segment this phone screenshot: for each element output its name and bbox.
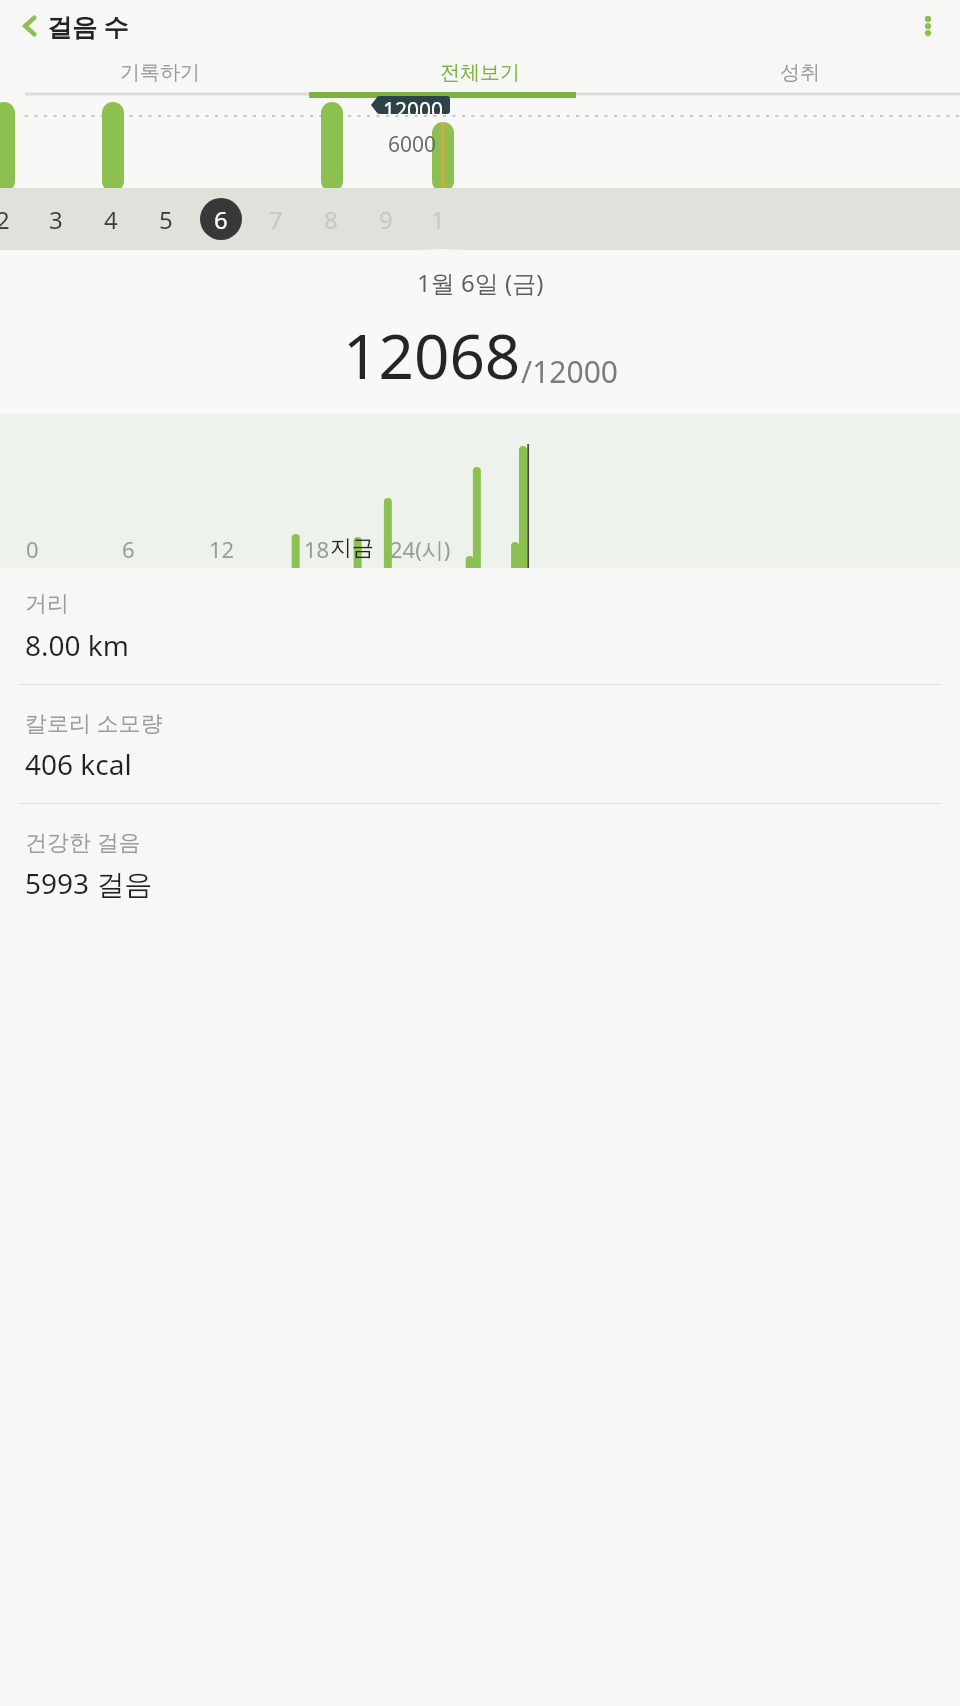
staticText: 0 xyxy=(26,534,39,564)
button[interactable]: Back xyxy=(6,2,54,50)
staticText: 6 xyxy=(214,203,228,236)
staticText: 12 xyxy=(209,534,235,564)
staticText: 기록하기 xyxy=(120,60,200,85)
staticText: 5 xyxy=(159,203,173,236)
staticText: 1월 6일 (금) xyxy=(417,266,544,299)
button[interactable]: 9 xyxy=(365,198,407,240)
staticText: 12000 xyxy=(383,96,444,114)
staticText: 7 xyxy=(269,203,283,236)
staticText: 거리 xyxy=(25,590,69,618)
button[interactable]: 6 xyxy=(200,198,242,240)
button[interactable]: 4 xyxy=(90,198,132,240)
staticText: 24(시) xyxy=(390,534,451,564)
button[interactable]: 1 xyxy=(417,198,459,240)
staticText: 9 xyxy=(379,203,393,236)
button[interactable]: 8 xyxy=(310,198,352,240)
button[interactable]: 기록하기 xyxy=(0,52,320,92)
staticText: /12000 xyxy=(521,351,618,392)
staticText: 406 kcal xyxy=(25,745,132,783)
button[interactable]: 전체보기 xyxy=(320,52,640,92)
staticText: 걸음 수 xyxy=(47,9,129,43)
staticText: 전체보기 xyxy=(440,60,520,85)
staticText: 지금 xyxy=(330,534,374,562)
staticText: 5993 걸음 xyxy=(25,864,153,902)
staticText: 칼로리 소모량 xyxy=(25,707,163,737)
button[interactable]: 5 xyxy=(145,198,187,240)
button[interactable]: 거리 xyxy=(0,568,960,685)
button[interactable]: 7 xyxy=(255,198,297,240)
staticText: 4 xyxy=(104,203,118,236)
staticText: 6000 xyxy=(388,130,437,159)
button[interactable]: 칼로리 소모량 xyxy=(0,685,960,804)
staticText: 건강한 걸음 xyxy=(25,826,141,856)
staticText: 2 xyxy=(0,203,10,236)
staticText: 6 xyxy=(122,534,135,564)
staticText: 성취 xyxy=(780,60,820,85)
button[interactable]: More options xyxy=(904,2,952,50)
button[interactable]: 2 xyxy=(0,198,24,240)
staticText: 8 xyxy=(324,203,338,236)
button[interactable]: 3 xyxy=(35,198,77,240)
staticText: 12068 xyxy=(343,313,521,397)
staticText: 1 xyxy=(431,203,445,236)
staticText: 18 xyxy=(304,534,330,564)
staticText: 8.00 km xyxy=(25,626,129,664)
staticText: 3 xyxy=(49,203,63,236)
button[interactable]: 성취 xyxy=(640,52,960,92)
button[interactable]: 건강한 걸음 xyxy=(0,804,960,922)
